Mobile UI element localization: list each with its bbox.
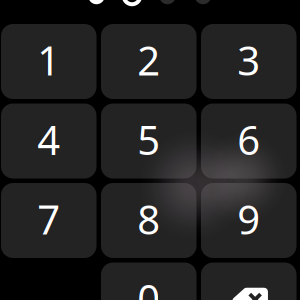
staticText: 3 <box>237 33 260 87</box>
staticText: 1 <box>37 33 60 87</box>
staticText: 2 <box>137 33 160 87</box>
staticText: 4 <box>37 113 60 166</box>
staticText: 8 <box>137 192 160 246</box>
button[interactable]: 7 <box>1 183 96 258</box>
button[interactable]: 5 <box>101 103 196 178</box>
button[interactable]: 6 <box>201 103 296 178</box>
button[interactable]: 0 <box>101 262 196 300</box>
staticText: 7 <box>37 192 60 246</box>
staticText: 9 <box>237 192 260 246</box>
staticText: 0 <box>137 272 160 300</box>
button[interactable]: 1 <box>1 24 96 99</box>
staticText: 6 <box>237 113 260 166</box>
button[interactable]: 4 <box>1 103 96 178</box>
button[interactable]: 2 <box>101 24 196 99</box>
button[interactable]: 3 <box>201 24 296 99</box>
button[interactable]: 9 <box>201 183 296 258</box>
button[interactable]: Delete <box>201 262 296 300</box>
staticText: 5 <box>137 113 160 166</box>
button[interactable]: 8 <box>101 183 196 258</box>
